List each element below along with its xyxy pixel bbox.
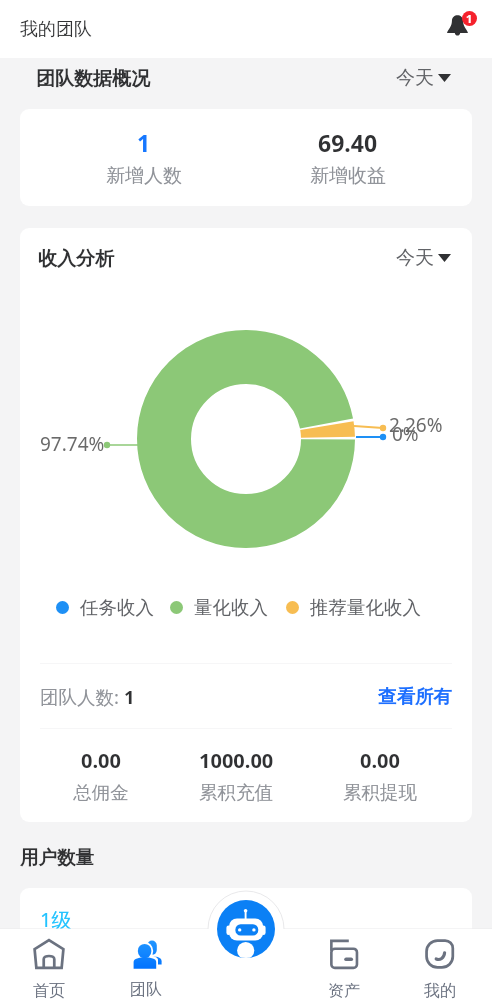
staticText: 查看所有 [378, 685, 452, 708]
button[interactable]: AI assistant [217, 900, 275, 958]
staticText: 0% [392, 421, 419, 447]
staticText: 1000.00 [199, 747, 274, 774]
button[interactable]: 查看所有 [378, 685, 452, 708]
staticText: 累积提现 [343, 781, 417, 804]
staticText: 用户数量 [20, 846, 94, 869]
staticText: 量化收入 [194, 596, 268, 619]
staticText: 0.00 [360, 747, 400, 774]
staticText: 69.40 [318, 127, 378, 158]
button[interactable]: 今天 [396, 246, 451, 270]
staticText: 团队人数: [40, 684, 124, 709]
staticText: 1 [137, 127, 151, 158]
staticText: 0.00 [81, 747, 121, 774]
button[interactable]: 我的 [400, 929, 480, 1007]
staticText: 97.74% [40, 431, 105, 457]
staticText: 1 [466, 11, 473, 26]
staticText: 新增人数 [106, 164, 182, 188]
staticText: 任务收入 [80, 596, 154, 619]
staticText: 1 [124, 684, 135, 709]
staticText: 团队 [130, 980, 162, 1000]
staticText: 1级 [40, 906, 72, 933]
staticText: 我的团队 [20, 18, 92, 41]
staticText: 我的 [424, 981, 456, 1001]
staticText: 首页 [33, 981, 65, 1001]
staticText: 累积充值 [199, 781, 273, 804]
button[interactable]: 团队 [106, 929, 186, 1007]
button[interactable]: 资产 [304, 929, 384, 1007]
staticText: 资产 [328, 981, 360, 1001]
staticText: 推荐量化收入 [310, 596, 421, 619]
staticText: 团队数据概况 [36, 67, 150, 91]
button[interactable]: 今天 [396, 66, 451, 90]
staticText: 收入分析 [38, 247, 114, 271]
staticText: 新增收益 [310, 164, 386, 188]
staticText: 总佣金 [73, 781, 129, 804]
staticText: 2.26% [389, 412, 443, 438]
staticText: 今天 [396, 246, 434, 270]
staticText: 今天 [396, 66, 434, 90]
button[interactable]: Notifications [444, 9, 480, 45]
button[interactable]: 首页 [9, 929, 89, 1007]
